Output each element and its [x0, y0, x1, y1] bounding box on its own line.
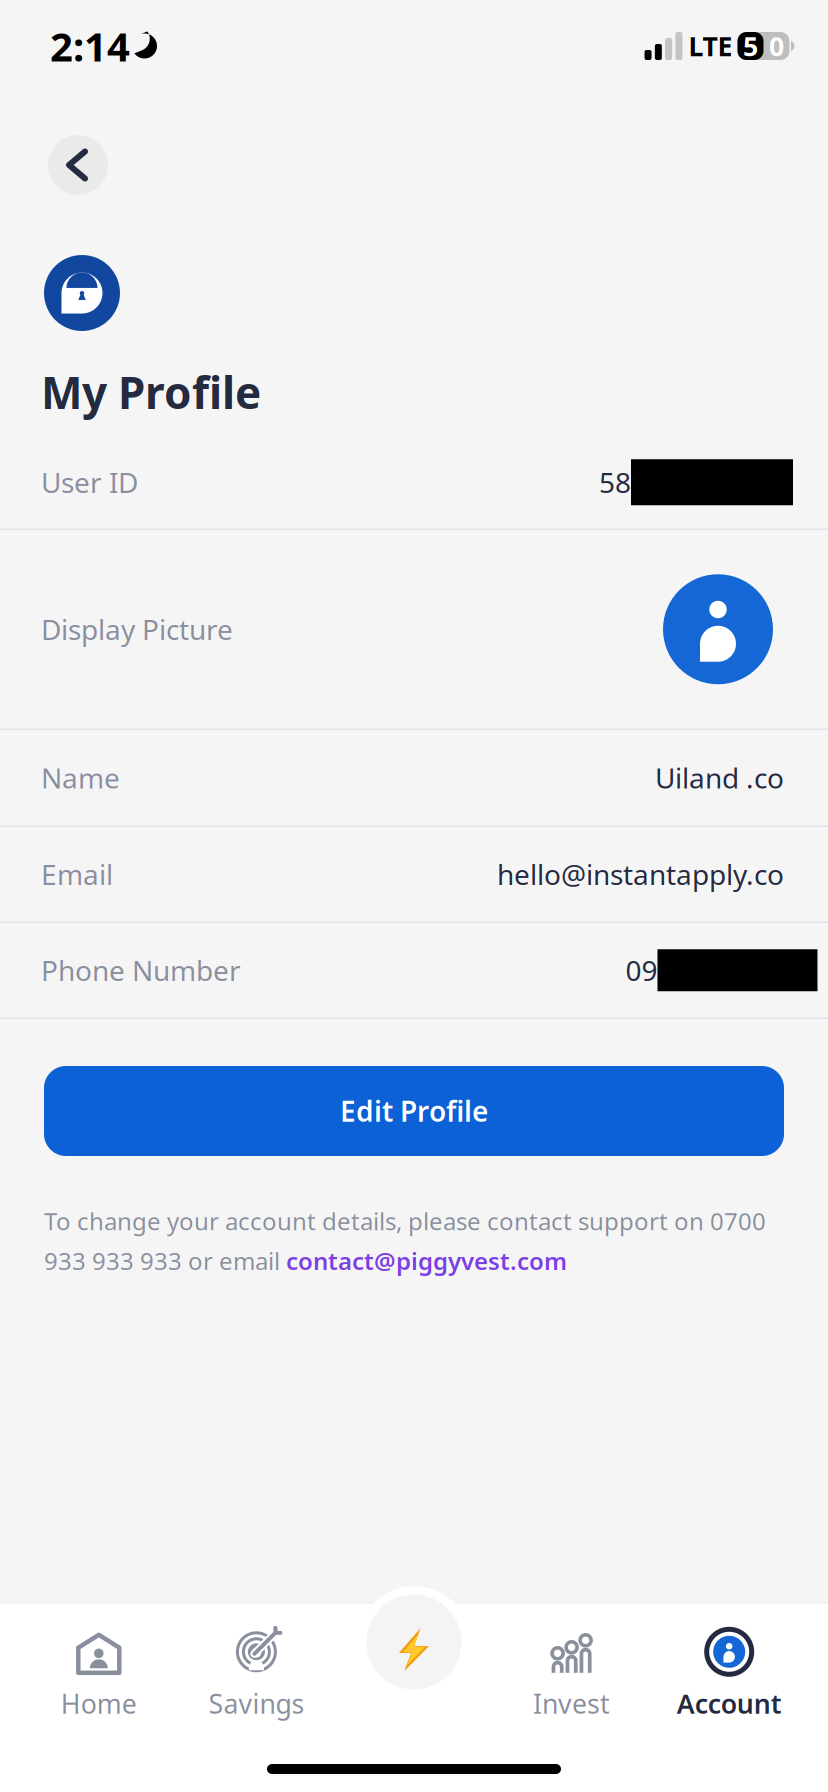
button[interactable]: Back — [48, 135, 108, 195]
button[interactable]: Quick action — [358, 1586, 470, 1698]
staticText: Display Picture — [41, 611, 233, 648]
staticText: Account — [677, 1686, 782, 1721]
staticText: 0 — [769, 28, 784, 64]
staticText: Phone Number — [41, 952, 241, 989]
button[interactable]: contact@piggyvest.com — [286, 1245, 567, 1277]
button[interactable]: Savings — [178, 1603, 335, 1716]
staticText: User ID — [41, 464, 138, 501]
staticText: 933 933 933 or email — [44, 1245, 286, 1277]
button[interactable]: Change display picture — [663, 574, 773, 684]
staticText: hello@instantapply.co — [497, 856, 784, 893]
staticText: contact@piggyvest.com — [286, 1245, 567, 1277]
button[interactable]: Invest — [493, 1603, 650, 1716]
staticText: 58 — [599, 464, 631, 501]
staticText: Home — [61, 1686, 137, 1721]
staticText: Invest — [533, 1686, 610, 1721]
button[interactable]: Edit Profile — [44, 1066, 784, 1156]
staticText: Edit Profile — [340, 1092, 488, 1130]
staticText: Uiland .co — [655, 759, 784, 796]
staticText: LTE — [688, 28, 732, 64]
staticText: Email — [41, 856, 113, 893]
staticText: Name — [41, 759, 120, 796]
staticText: 2:14 — [50, 19, 130, 72]
staticText: Savings — [208, 1686, 304, 1721]
staticText: 09 — [625, 952, 657, 989]
button[interactable]: Home — [20, 1603, 178, 1716]
staticText: My Profile — [41, 363, 261, 421]
button[interactable]: Account — [650, 1603, 808, 1716]
staticText: 5 — [743, 28, 758, 64]
staticText: To change your account details, please c… — [44, 1205, 766, 1237]
